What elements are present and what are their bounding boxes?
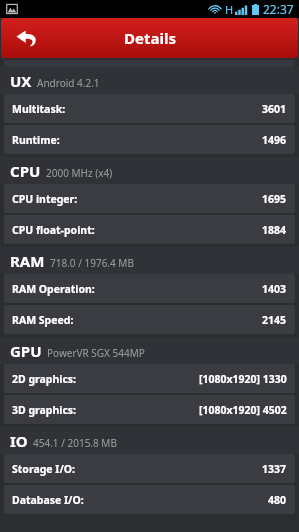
staticText: RAM Operation: — [12, 282, 95, 296]
staticText: 2145 — [262, 313, 287, 327]
staticText: 480 — [268, 493, 287, 507]
staticText: 2000 MHz (x4) — [46, 166, 113, 180]
staticText: 718.0 / 1976.4 MB — [50, 256, 134, 270]
staticText: Storage I/O: — [12, 462, 76, 476]
button[interactable]: Database I/O: — [4, 485, 295, 514]
button[interactable]: RAM Speed: — [4, 305, 295, 334]
staticText: 22:37 — [263, 1, 294, 17]
staticText: Database I/O: — [12, 493, 84, 507]
staticText: H — [225, 2, 234, 17]
staticText: [1080x1920] 1330 — [199, 372, 287, 386]
staticText: [1080x1920] 4502 — [199, 403, 287, 417]
staticText: 3601 — [262, 102, 287, 116]
staticText: 1403 — [262, 282, 287, 296]
staticText: CPU — [10, 161, 41, 181]
staticText: GPU — [10, 341, 42, 361]
staticText: Android 4.2.1 — [37, 76, 100, 90]
staticText: Details — [124, 28, 176, 48]
button[interactable]: 3D graphics: — [4, 395, 295, 424]
staticText: RAM — [10, 251, 45, 271]
button[interactable]: 2D graphics: — [4, 364, 295, 393]
button[interactable]: RAM Operation: — [4, 274, 295, 303]
staticText: Runtime: — [12, 133, 60, 147]
button[interactable]: CPU integer: — [4, 184, 295, 213]
button[interactable]: CPU float-point: — [4, 215, 295, 244]
staticText: CPU float-point: — [12, 223, 95, 237]
staticText: 454.1 / 2015.8 MB — [33, 436, 117, 450]
button[interactable]: Multitask: — [4, 94, 295, 123]
staticText: 1695 — [262, 192, 287, 206]
staticText: RAM Speed: — [12, 313, 74, 327]
staticText: PowerVR SGX 544MP — [47, 346, 145, 360]
staticText: UX — [10, 71, 32, 91]
button[interactable]: Back — [1, 18, 53, 58]
staticText: Multitask: — [12, 102, 66, 116]
staticText: 3D graphics: — [12, 403, 77, 417]
staticText: 1337 — [262, 462, 287, 476]
staticText: CPU integer: — [12, 192, 78, 206]
button[interactable]: Runtime: — [4, 125, 295, 154]
staticText: 1496 — [262, 133, 287, 147]
staticText: 2D graphics: — [12, 372, 77, 386]
staticText: IO — [10, 431, 28, 451]
staticText: 1884 — [262, 223, 287, 237]
button[interactable]: Storage I/O: — [4, 454, 295, 483]
